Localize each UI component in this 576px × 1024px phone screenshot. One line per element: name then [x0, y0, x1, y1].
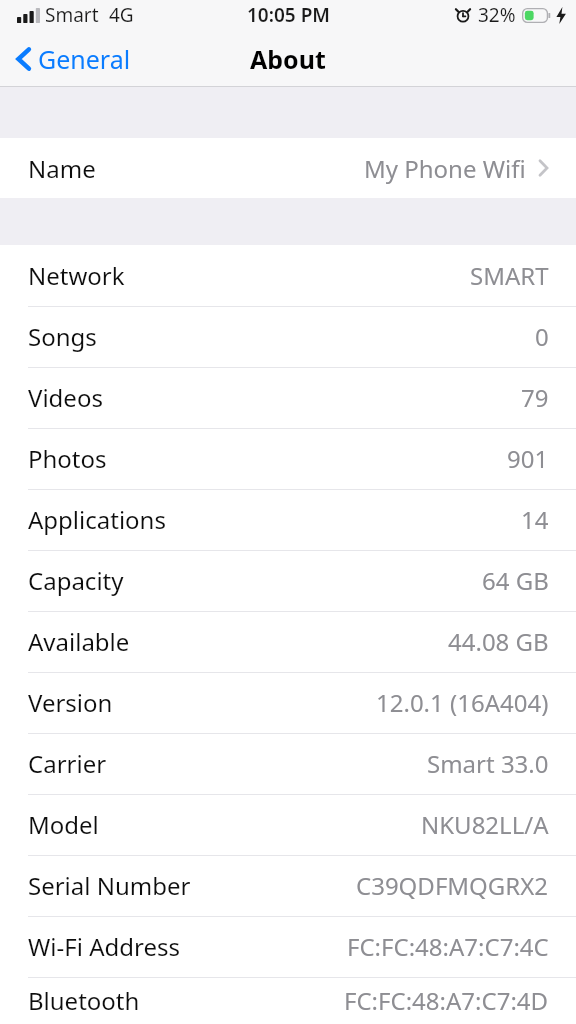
button[interactable]: Wi-Fi Address — [0, 916, 576, 977]
staticText: 4G — [109, 2, 134, 28]
staticText: Smart — [45, 2, 99, 28]
staticText: 64 GB — [482, 564, 549, 597]
staticText: Serial Number — [28, 869, 191, 902]
staticText: Carrier — [28, 747, 107, 780]
staticText: About — [250, 42, 326, 76]
button[interactable]: Videos — [0, 367, 576, 428]
staticText: 14 — [521, 503, 549, 536]
button[interactable]: Carrier — [0, 733, 576, 794]
staticText: Applications — [28, 503, 166, 536]
staticText: 10:05 PM — [247, 2, 330, 28]
staticText: 32% — [478, 2, 516, 28]
button[interactable]: Available — [0, 611, 576, 672]
staticText: My Phone Wifi — [364, 152, 526, 185]
button[interactable]: Serial Number — [0, 855, 576, 916]
button[interactable]: Capacity — [0, 550, 576, 611]
other: Alarm set — [455, 7, 471, 23]
staticText: 44.08 GB — [448, 625, 549, 658]
staticText: Available — [28, 625, 130, 658]
button[interactable]: Applications — [0, 489, 576, 550]
staticText: Bluetooth — [28, 984, 140, 1017]
staticText: General — [38, 42, 131, 76]
staticText: SMART — [470, 259, 549, 292]
staticText: 12.0.1 (16A404) — [376, 686, 549, 719]
staticText: FC:FC:48:A7:C7:4D — [344, 984, 549, 1017]
staticText: Photos — [28, 442, 107, 475]
button[interactable]: General — [0, 34, 145, 84]
button[interactable]: Model — [0, 794, 576, 855]
staticText: Capacity — [28, 564, 124, 597]
staticText: Songs — [28, 320, 97, 353]
staticText: Version — [28, 686, 113, 719]
staticText: Videos — [28, 381, 103, 414]
staticText: Model — [28, 808, 99, 841]
button[interactable]: Name — [0, 138, 576, 198]
staticText: FC:FC:48:A7:C7:4C — [347, 930, 549, 963]
staticText: NKU82LL/A — [421, 808, 549, 841]
staticText: 0 — [535, 320, 549, 353]
button[interactable]: Network — [0, 245, 576, 306]
staticText: Network — [28, 259, 125, 292]
staticText: 901 — [507, 442, 549, 475]
staticText: 79 — [521, 381, 549, 414]
button[interactable]: Songs — [0, 306, 576, 367]
button[interactable]: Version — [0, 672, 576, 733]
button[interactable]: Photos — [0, 428, 576, 489]
staticText: C39QDFMQGRX2 — [356, 869, 549, 902]
staticText: Name — [28, 152, 96, 185]
staticText: Wi-Fi Address — [28, 930, 180, 963]
staticText: Smart 33.0 — [427, 747, 549, 780]
button[interactable]: Bluetooth — [0, 977, 576, 1024]
